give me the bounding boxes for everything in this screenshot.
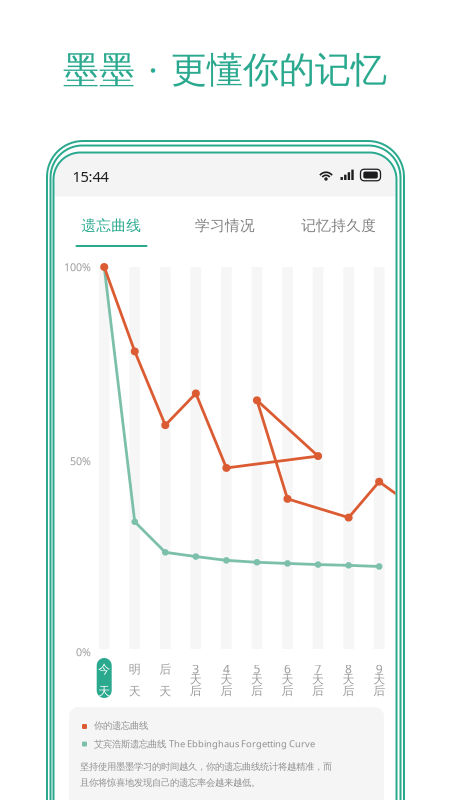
staticText: 后 (281, 683, 293, 698)
staticText: 5 (253, 661, 260, 677)
staticText: 天 (251, 672, 263, 687)
staticText: 后 (312, 683, 324, 698)
staticText: 9 (376, 661, 383, 677)
staticText: 天 (373, 672, 385, 687)
staticText: 天 (159, 684, 171, 699)
staticText: 4 (223, 661, 230, 677)
staticText: 且你将惊喜地发现自己的遗忘率会越来越低。 (80, 777, 260, 788)
staticText: 后 (159, 662, 171, 677)
staticText: 后 (190, 683, 202, 698)
staticText: 3 (192, 661, 199, 677)
staticText: 天 (220, 672, 232, 687)
staticText: 50% (70, 454, 91, 468)
staticText: 墨墨 (63, 48, 135, 92)
staticText: 100% (64, 260, 91, 274)
staticText: 7 (315, 661, 322, 677)
staticText: 天 (312, 672, 324, 687)
staticText: 今 (98, 662, 110, 677)
staticText: 艾宾浩斯遗忘曲线 The Ebbinghaus Forgetting Curve (94, 737, 315, 750)
staticText: 天 (281, 672, 293, 687)
staticText: 天 (343, 672, 355, 687)
staticText: 后 (251, 683, 263, 698)
staticText: 天 (98, 684, 110, 699)
staticText: 你的遗忘曲线 (94, 720, 148, 731)
staticText: · (135, 51, 171, 89)
staticText: 后 (343, 683, 355, 698)
button[interactable]: 学习情况 (168, 207, 282, 243)
staticText: 学习情况 (195, 216, 255, 234)
staticText: 后 (220, 683, 232, 698)
staticText: 0% (76, 645, 91, 659)
staticText: 15:44 (72, 166, 108, 186)
staticText: 6 (284, 661, 291, 677)
staticText: 明 (129, 662, 141, 677)
staticText: 遗忘曲线 (81, 216, 141, 234)
staticText: 天 (129, 684, 141, 699)
staticText: 更懂你的记忆 (171, 48, 387, 92)
button[interactable]: 遗忘曲线 (54, 207, 168, 243)
staticText: 天 (190, 672, 202, 687)
staticText: 8 (345, 661, 352, 677)
staticText: 记忆持久度 (301, 216, 376, 234)
staticText: 后 (373, 683, 385, 698)
staticText: 坚持使用墨墨学习的时间越久，你的遗忘曲线统计将越精准，而 (80, 761, 332, 772)
button[interactable]: 记忆持久度 (282, 207, 395, 243)
